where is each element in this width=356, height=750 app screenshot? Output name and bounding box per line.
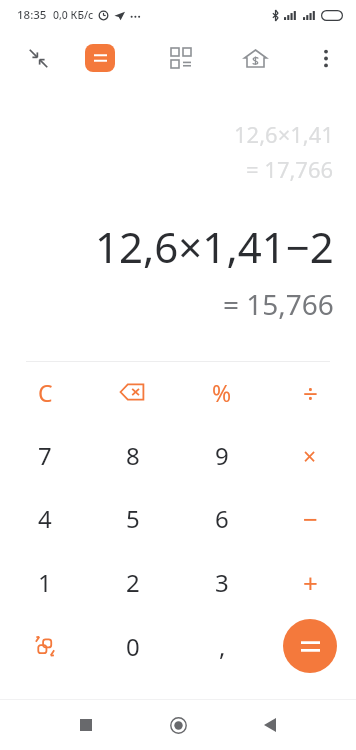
staticText: % (212, 377, 232, 408)
staticText: 3 (215, 566, 229, 599)
staticText: 18:35 (17, 7, 47, 23)
button[interactable]: , (190, 618, 254, 674)
staticText: 4 (38, 502, 52, 535)
staticText: , (219, 630, 226, 663)
button[interactable]: Collapse (16, 27, 60, 89)
button[interactable]: Backspace (101, 364, 165, 420)
staticText: 7 (38, 439, 52, 472)
staticText: − (303, 501, 318, 536)
button[interactable]: 4 (13, 490, 77, 546)
staticText: 12,6×1,41 (234, 119, 334, 149)
button[interactable]: ÷ (278, 364, 342, 420)
staticText: = 15,766 (223, 285, 334, 323)
button[interactable]: 0 (101, 618, 165, 674)
button[interactable]: C (13, 364, 77, 420)
button[interactable]: % (190, 364, 254, 420)
staticText: 2 (126, 566, 140, 599)
button[interactable]: 8 (101, 427, 165, 483)
staticText: C (38, 377, 53, 408)
button[interactable]: Equals (283, 619, 337, 673)
staticText: 6 (215, 502, 229, 535)
staticText: × (303, 440, 317, 471)
staticText: = 17,766 (246, 154, 334, 184)
staticText: 0,0 КБ/с (53, 8, 94, 22)
button[interactable]: × (278, 427, 342, 483)
button[interactable]: 7 (13, 427, 77, 483)
staticText: 8 (126, 439, 140, 472)
button[interactable]: Home (152, 700, 204, 750)
staticText: ÷ (303, 375, 318, 410)
staticText: 1 (38, 566, 52, 599)
button[interactable]: + (278, 554, 342, 610)
staticText: 9 (215, 439, 229, 472)
button[interactable]: Unit converter (13, 618, 77, 674)
staticText: 0 (126, 630, 140, 663)
button[interactable]: 9 (190, 427, 254, 483)
button[interactable]: Calculator (78, 36, 122, 80)
button[interactable]: 2 (101, 554, 165, 610)
button[interactable]: 5 (101, 490, 165, 546)
button[interactable]: More options (304, 36, 348, 80)
button[interactable]: 6 (190, 490, 254, 546)
staticText: + (303, 565, 318, 600)
button[interactable]: Mortgage (233, 27, 277, 89)
button[interactable]: − (278, 490, 342, 546)
button[interactable]: Converters (159, 27, 203, 89)
button[interactable]: Recents (60, 700, 112, 750)
staticText: 12,6×1,41−2 (95, 218, 334, 275)
staticText: 5 (126, 502, 140, 535)
button[interactable]: 1 (13, 554, 77, 610)
button[interactable]: 3 (190, 554, 254, 610)
button[interactable]: Back (244, 700, 296, 750)
